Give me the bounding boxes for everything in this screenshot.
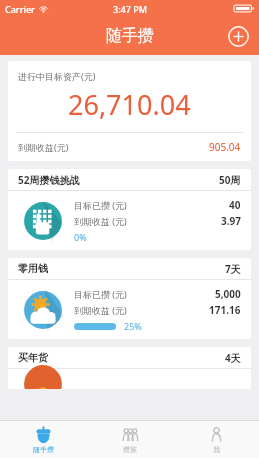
- button[interactable]: Add goal: [225, 23, 251, 49]
- staticText: 3:47 PM: [113, 3, 147, 15]
- staticText: 7天: [225, 262, 241, 276]
- staticText: 随手攒: [106, 26, 154, 46]
- staticText: 52周攒钱挑战: [18, 173, 80, 187]
- staticText: 50周: [219, 173, 241, 187]
- staticText: 买年货: [18, 351, 48, 364]
- staticText: 随手攒: [33, 445, 54, 454]
- button[interactable]: 攒族: [87, 421, 173, 458]
- button[interactable]: 零用钱: [8, 258, 251, 339]
- staticText: 905.04: [209, 140, 241, 154]
- button[interactable]: 买年货: [8, 347, 251, 389]
- staticText: 26,710.04: [68, 86, 191, 123]
- staticText: 0%: [74, 231, 87, 243]
- staticText: Carrier: [5, 3, 35, 15]
- staticText: 我: [213, 445, 220, 454]
- staticText: 目标已攒 (元): [74, 288, 127, 300]
- staticText: 进行中目标资产(元): [18, 70, 96, 82]
- staticText: 到期收益(元): [18, 141, 69, 153]
- staticText: 4天: [225, 351, 241, 365]
- staticText: 到期收益 (元): [74, 304, 127, 316]
- staticText: 零用钱: [18, 262, 48, 275]
- button[interactable]: 进行中目标资产(元): [8, 61, 251, 161]
- button[interactable]: 52周攒钱挑战: [8, 169, 251, 250]
- staticText: 25%: [124, 320, 142, 332]
- staticText: 5,000: [215, 287, 241, 301]
- button[interactable]: 随手攒: [0, 421, 87, 458]
- staticText: 3.97: [221, 214, 241, 228]
- staticText: 40: [229, 198, 241, 212]
- staticText: 目标已攒 (元): [74, 199, 127, 211]
- button[interactable]: 我: [173, 421, 259, 458]
- staticText: 171.16: [209, 303, 241, 317]
- staticText: 攒族: [123, 445, 137, 454]
- staticText: 到期收益 (元): [74, 215, 127, 227]
